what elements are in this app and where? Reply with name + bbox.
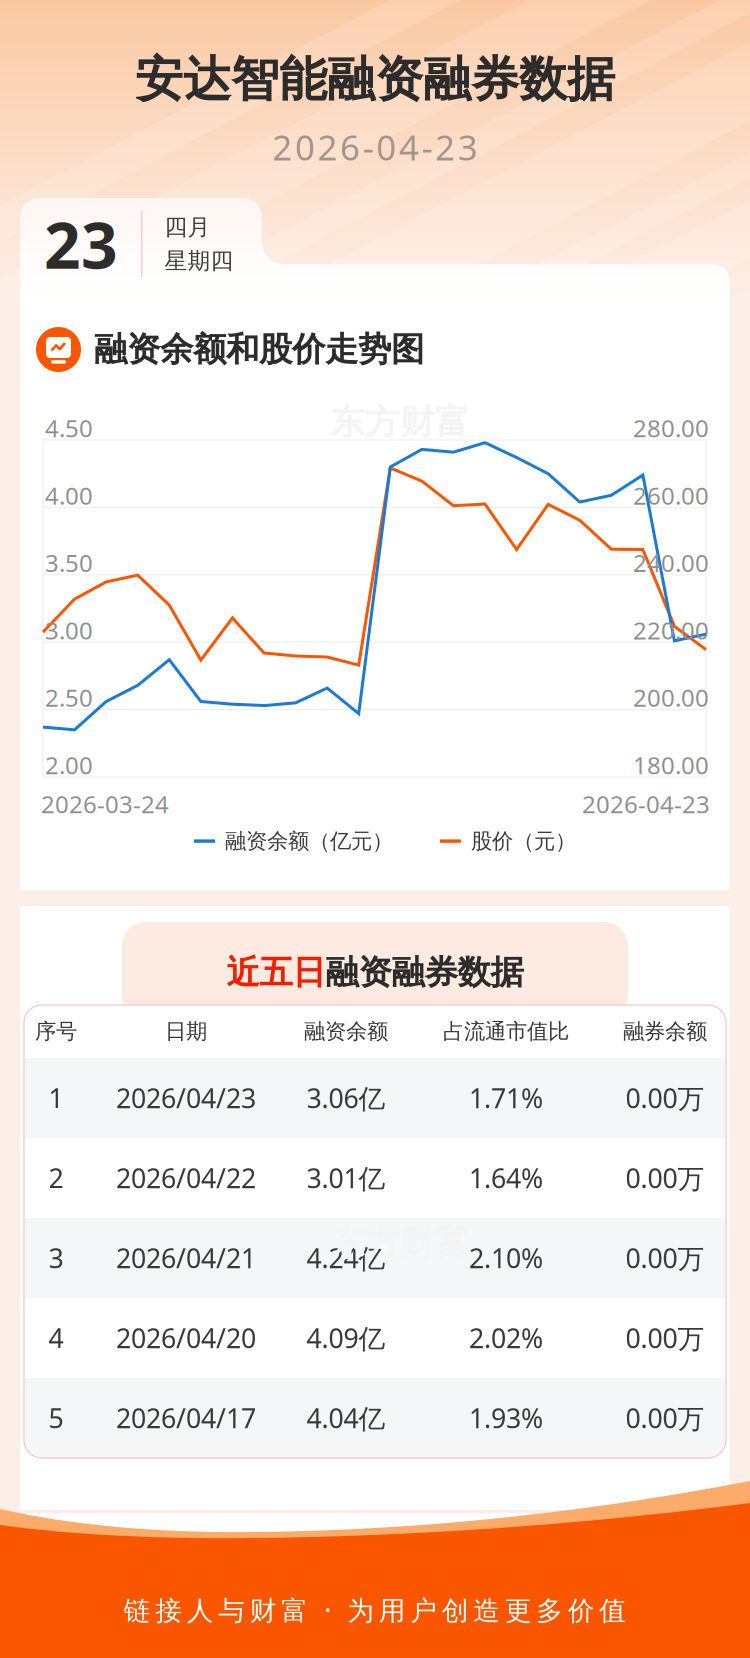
- staticText: 23: [44, 201, 118, 286]
- staticText: 200.00: [633, 682, 709, 713]
- staticText: 1.93%: [469, 1400, 543, 1436]
- staticText: 链接人与财富 · 为用户创造更多价值: [124, 1592, 626, 1627]
- staticText: 3.06亿: [306, 1080, 385, 1116]
- staticText: 近五日: [226, 952, 325, 993]
- staticText: 220.00: [633, 614, 709, 646]
- staticText: 2.00: [45, 749, 93, 781]
- staticText: 180.00: [633, 749, 709, 781]
- staticText: 安达智能融资融券数据: [135, 50, 615, 109]
- staticText: 3.50: [45, 547, 93, 579]
- staticText: 日期: [165, 1018, 207, 1045]
- staticText: 融资融券数据: [325, 952, 523, 993]
- staticText: 280.00: [633, 412, 709, 444]
- staticText: 0.00万: [625, 1080, 704, 1116]
- staticText: 星期四: [164, 247, 233, 275]
- staticText: 融资余额和股价走势图: [94, 329, 424, 370]
- staticText: 2026-03-24: [41, 788, 169, 820]
- staticText: 3: [48, 1240, 63, 1276]
- staticText: 3.01亿: [306, 1160, 385, 1196]
- staticText: 2: [48, 1160, 63, 1196]
- staticText: 4.04亿: [306, 1400, 385, 1436]
- staticText: 1: [48, 1080, 63, 1116]
- staticText: 2026/04/20: [116, 1320, 256, 1356]
- staticText: 5: [48, 1400, 63, 1436]
- staticText: 2.02%: [469, 1320, 543, 1356]
- staticText: 0.00万: [625, 1320, 704, 1356]
- staticText: 2026-04-23: [272, 124, 478, 170]
- staticText: 股价（元）: [471, 828, 576, 854]
- staticText: 4.09亿: [306, 1320, 385, 1356]
- staticText: 1.71%: [469, 1080, 543, 1116]
- staticText: 占流通市值比: [443, 1018, 569, 1045]
- staticText: 4.24亿: [306, 1240, 385, 1276]
- staticText: 4: [48, 1320, 63, 1356]
- staticText: 2026/04/23: [116, 1080, 256, 1116]
- staticText: 0.00万: [625, 1400, 704, 1436]
- staticText: 0.00万: [625, 1160, 704, 1196]
- staticText: 2026/04/17: [116, 1400, 256, 1436]
- staticText: 3.00: [45, 614, 93, 646]
- staticText: 融券余额: [623, 1018, 707, 1045]
- staticText: 2.50: [45, 682, 93, 713]
- staticText: 2.10%: [469, 1240, 543, 1276]
- staticText: 1.64%: [469, 1160, 543, 1196]
- staticText: 2026-04-23: [582, 788, 710, 820]
- staticText: 4.50: [45, 412, 93, 444]
- staticText: 东方财富: [330, 401, 470, 444]
- staticText: 融资余额（亿元）: [225, 828, 393, 854]
- staticText: 240.00: [633, 547, 709, 579]
- staticText: 4.00: [45, 479, 93, 511]
- staticText: 东方财富: [330, 1222, 470, 1265]
- staticText: 260.00: [633, 479, 709, 511]
- staticText: 四月: [164, 213, 210, 241]
- staticText: 0.00万: [625, 1240, 704, 1276]
- staticText: 2026/04/22: [116, 1160, 256, 1196]
- staticText: 2026/04/21: [116, 1240, 256, 1276]
- staticText: 融资余额: [304, 1018, 388, 1045]
- staticText: 序号: [35, 1018, 77, 1045]
